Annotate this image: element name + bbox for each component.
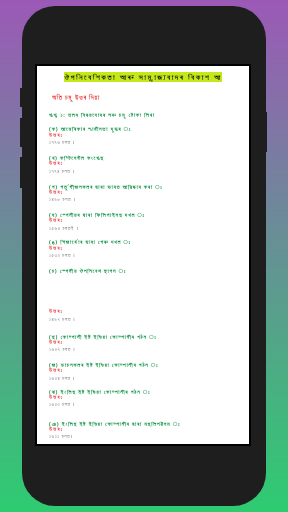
staticText: (ঞ) ইংলিছ ইষ্ট ইণ্ডিয়া কোম্পানীৰ দ্বাৰা… xyxy=(49,420,181,427)
staticText: (ক) আমেৰিকাৰ স্বাধীনতা যুদ্ধৰ ঃ xyxy=(49,125,132,132)
button[interactable]: ঔপনিবেশিকতা আৰু সাম্ৰাজ্যবাদৰ বিকাশ আ xyxy=(37,66,249,444)
staticText: ১৬০০ চনত । xyxy=(49,401,76,408)
staticText: ১৭৭৪ চনত । xyxy=(49,168,75,175)
staticText: ১৬০২ চনত । xyxy=(49,346,76,353)
staticText: অতি চমু উত্তৰ দিয়া xyxy=(52,93,100,101)
staticText: উত্তৰঃ xyxy=(49,368,64,374)
staticText: ১৭৭৬ চনত । xyxy=(49,139,76,146)
staticText: উত্তৰঃ xyxy=(49,340,64,346)
staticText: ১৪৯২ চনত । xyxy=(49,316,76,323)
staticText: (ছ) কোম্পানী ইষ্ট ইণ্ডিয়া কোম্পানীৰ গঠন… xyxy=(49,333,157,340)
staticText: (চ) স্পেনীয় ঔপনিবেশ স্থাপন ঃ xyxy=(49,267,126,274)
staticText: (ঝ) ইংলিছ ইষ্ট ইণ্ডিয়া কোম্পানীৰ গঠন ঃ xyxy=(49,388,151,395)
staticText: (জ) ডাচসকলৰ ইষ্ট ইণ্ডিয়া কোম্পানীৰ গঠন … xyxy=(49,361,159,368)
staticText: উত্তৰঃ xyxy=(49,246,64,252)
staticText: উত্তৰঃ xyxy=(49,309,64,315)
staticText: উত্তৰঃ xyxy=(49,190,64,196)
staticText: (ঙ) পিজাৰ্ৰোৰ দ্বাৰা পেৰু দখল ঃ xyxy=(49,238,131,245)
staticText: ১৫৬৫ চনতই । xyxy=(49,225,79,232)
staticText: উত্তৰঃ xyxy=(49,395,64,401)
staticText: (গ) পৰ্তুগীজসকলৰ দ্বাৰা ভাৰত আৱিষ্কাৰ কৰ… xyxy=(49,183,163,190)
staticText: উত্তৰঃ xyxy=(49,427,64,433)
staticText: প্ৰশ্ন ১: তলৰ বিষয়বোৰৰ সৰু চমু টোকা লিখ… xyxy=(49,111,155,118)
staticText: ১৪৯৮ চনত । xyxy=(49,196,76,203)
staticText: ১৬০৪ চনত । xyxy=(49,375,76,382)
staticText: উত্তৰঃ xyxy=(49,161,64,167)
staticText: উত্তৰঃ xyxy=(49,133,64,139)
button[interactable]: ঔপনিবেশিকতা আৰু সাম্ৰাজ্যবাদৰ বিকাশ আ xyxy=(64,72,222,82)
staticText: (খ) কণ্টিনেন্টল কংগ্ৰেছ xyxy=(49,154,104,161)
staticText: উত্তৰঃ xyxy=(49,218,64,224)
staticText: ১৬১১ চনত। xyxy=(49,433,73,440)
staticText: (ঘ) স্পেনীয়ৰ দ্বাৰা ফিলিপাইনছ দখল ঃ xyxy=(49,211,145,218)
staticText: ১৫৩০ চনত । xyxy=(49,252,76,259)
